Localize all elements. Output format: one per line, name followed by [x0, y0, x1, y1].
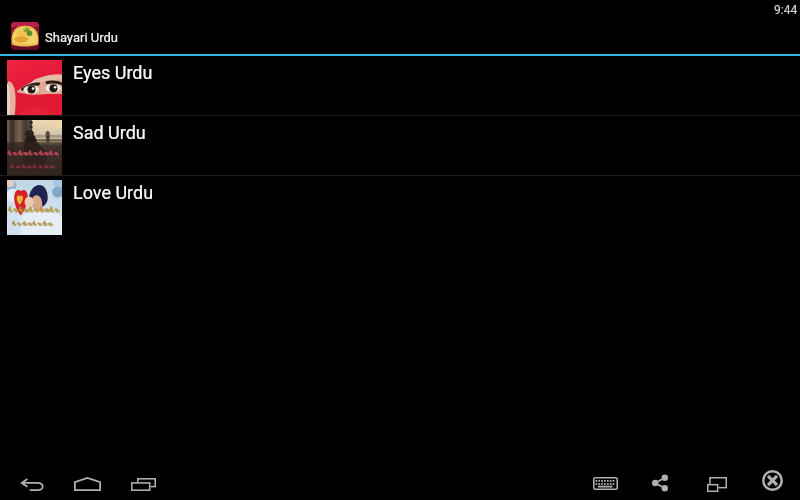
- staticText: Shayari Urdu: [45, 30, 118, 45]
- button[interactable]: Sad Urdu: [0, 116, 800, 175]
- button[interactable]: Love Urdu: [0, 176, 800, 235]
- button[interactable]: Share: [643, 459, 677, 500]
- staticText: Eyes Urdu: [73, 62, 153, 83]
- button[interactable]: Back: [12, 461, 53, 500]
- staticText: 9:44: [774, 3, 798, 17]
- button[interactable]: Recent apps: [122, 461, 165, 500]
- button[interactable]: Home: [65, 460, 110, 500]
- button[interactable]: Cast screen: [698, 460, 736, 500]
- button[interactable]: Show keyboard: [584, 460, 627, 500]
- staticText: Sad Urdu: [73, 122, 146, 143]
- button[interactable]: Shayari Urdu: [0, 18, 800, 54]
- staticText: Love Urdu: [73, 182, 154, 203]
- button[interactable]: Close: [753, 456, 792, 500]
- button[interactable]: Eyes Urdu: [0, 56, 800, 115]
